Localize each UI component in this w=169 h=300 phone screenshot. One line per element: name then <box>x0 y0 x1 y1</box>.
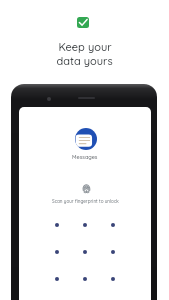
button[interactable]: Pattern dot <box>111 250 115 254</box>
staticText: Keep your <box>58 40 112 54</box>
button[interactable]: Pattern dot <box>55 223 59 227</box>
staticText: Scan your fingerprint to unlock <box>52 198 119 204</box>
staticText: data yours <box>56 54 113 68</box>
button[interactable]: Pattern dot <box>111 277 115 281</box>
button[interactable]: Pattern dot <box>83 250 87 254</box>
button[interactable]: Messages app <box>75 128 97 150</box>
staticText: Messages <box>72 153 98 160</box>
button[interactable]: Pattern dot <box>83 223 87 227</box>
button[interactable]: Pattern dot <box>55 277 59 281</box>
button[interactable]: Pattern dot <box>83 277 87 281</box>
button[interactable]: Pattern dot <box>55 250 59 254</box>
button[interactable]: Pattern dot <box>111 223 115 227</box>
button[interactable]: Fingerprint sensor <box>83 185 90 194</box>
button[interactable]: Verified <box>77 17 89 28</box>
